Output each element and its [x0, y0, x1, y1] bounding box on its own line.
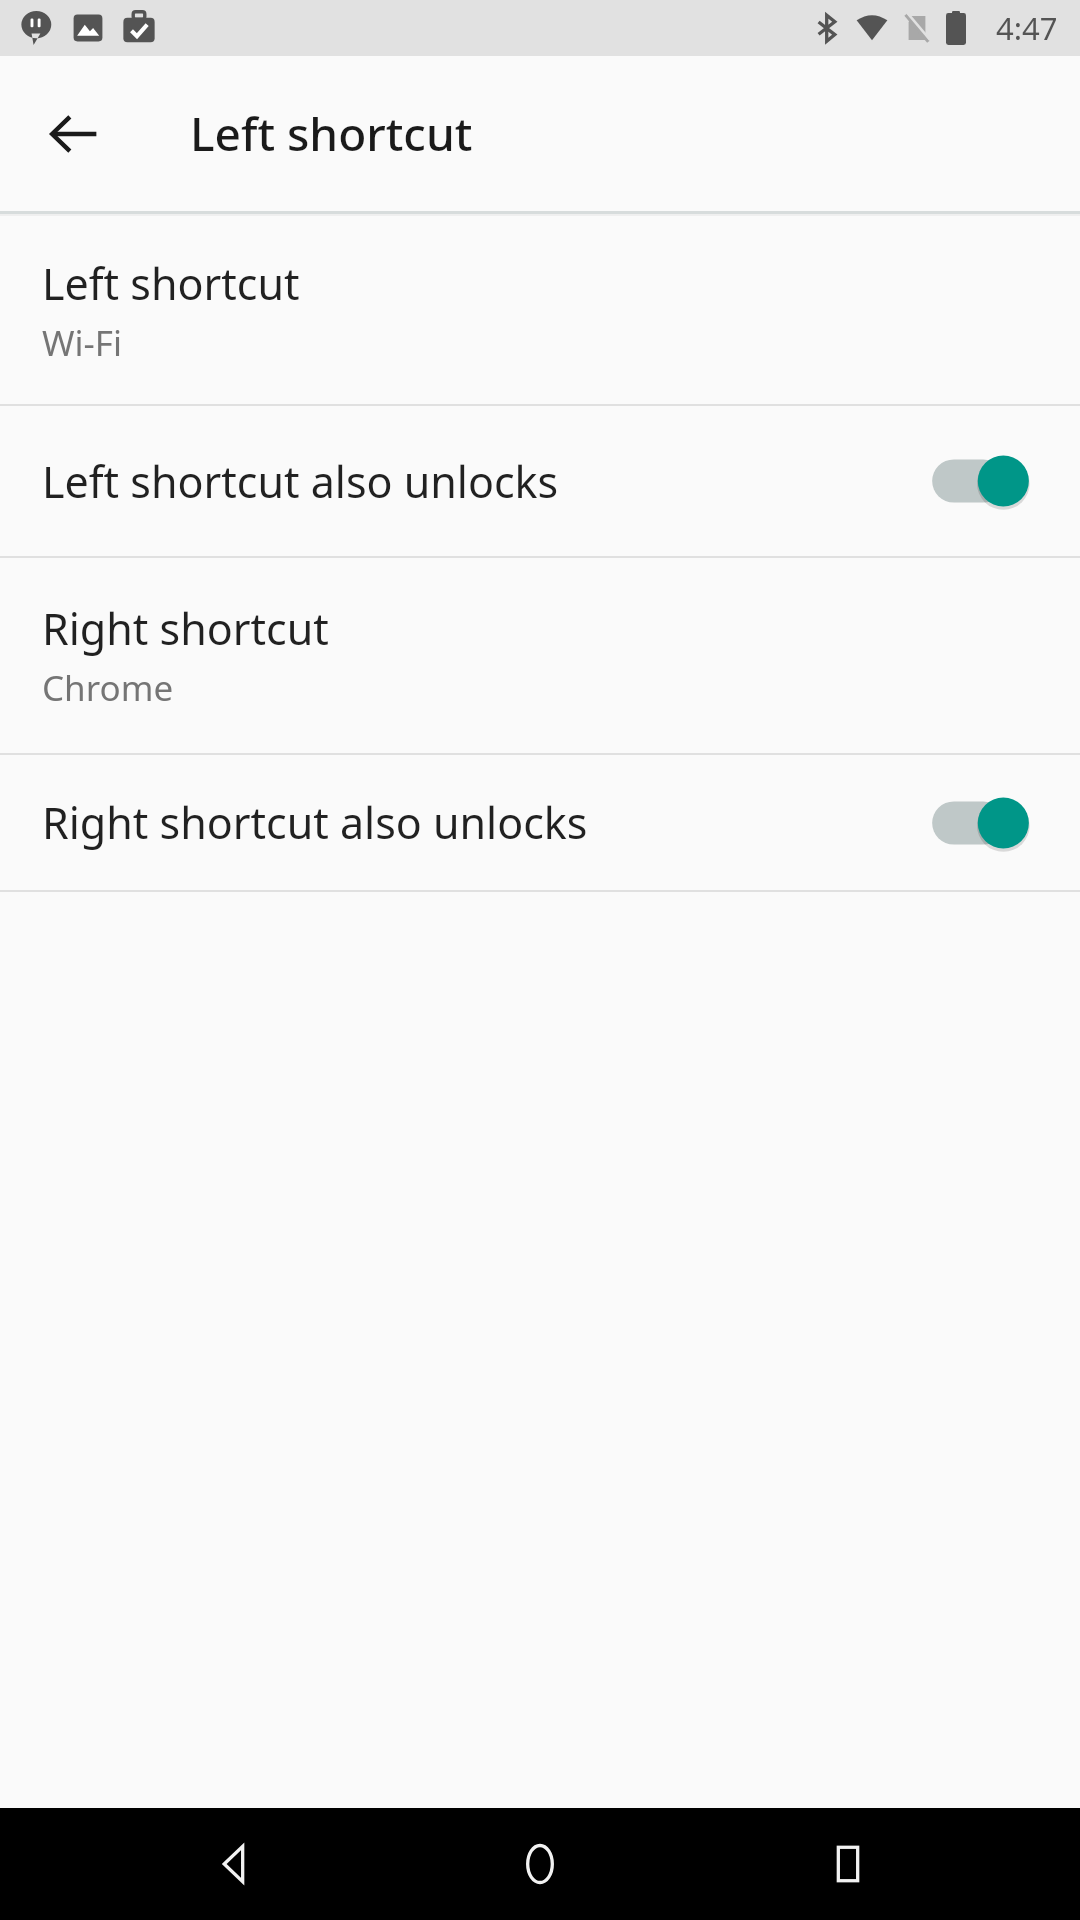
staticText: Right shortcut also unlocks [42, 793, 928, 852]
button[interactable]: Back [158, 1808, 308, 1920]
staticText: Left shortcut [42, 254, 300, 313]
staticText: Wi-Fi [42, 319, 123, 367]
button[interactable]: Left shortcut [0, 216, 1080, 404]
staticText: Left shortcut [190, 102, 473, 165]
staticText: Chrome [42, 664, 174, 712]
button[interactable]: Left shortcut also unlocks [0, 406, 1080, 556]
button[interactable]: Right shortcut [0, 558, 1080, 753]
button[interactable]: Toggle, on [928, 445, 1032, 517]
staticText: Left shortcut also unlocks [42, 452, 928, 511]
staticText: 4:47 [996, 7, 1058, 49]
button[interactable]: Right shortcut also unlocks [0, 755, 1080, 890]
button[interactable]: Recent apps [773, 1808, 923, 1920]
button[interactable]: Home [465, 1808, 615, 1920]
button[interactable]: Navigate up [28, 88, 120, 180]
button[interactable]: Toggle, on [928, 787, 1032, 859]
staticText: Right shortcut [42, 599, 329, 658]
